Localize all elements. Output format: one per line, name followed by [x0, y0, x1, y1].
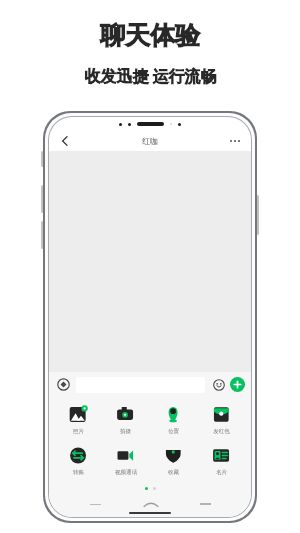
staticText: 红咖 — [142, 136, 158, 146]
staticText: 拍摄 — [120, 428, 131, 435]
staticText: 视频通话 — [115, 469, 137, 476]
button[interactable]: Video call — [102, 445, 149, 476]
staticText: 位置 — [168, 428, 179, 435]
staticText: 转账 — [73, 469, 84, 476]
staticText: 名片 — [216, 469, 227, 476]
button[interactable]: Location — [149, 404, 197, 435]
staticText: 聊天体验 — [100, 20, 200, 51]
staticText: 照片 — [73, 428, 84, 435]
button[interactable]: Business card — [197, 445, 245, 476]
staticText: 收发迅捷 运行流畅 — [84, 65, 217, 87]
button[interactable]: More options — [227, 133, 243, 149]
staticText: 发红包 — [213, 428, 230, 435]
button[interactable]: Recents — [67, 498, 123, 510]
button[interactable]: Back — [178, 498, 233, 510]
button[interactable]: Back — [57, 133, 73, 149]
button[interactable]: Camera — [102, 404, 149, 435]
button[interactable]: Home — [123, 498, 178, 510]
staticText: 收藏 — [168, 469, 179, 476]
button[interactable]: Red packet — [197, 404, 245, 435]
button[interactable]: Voice message — [55, 376, 72, 393]
button[interactable]: Transfer — [55, 445, 102, 476]
button[interactable]: Photo — [55, 404, 102, 435]
button[interactable]: Favorites — [149, 445, 197, 476]
button[interactable]: More functions — [230, 377, 245, 392]
button[interactable]: Emoji — [210, 376, 227, 393]
